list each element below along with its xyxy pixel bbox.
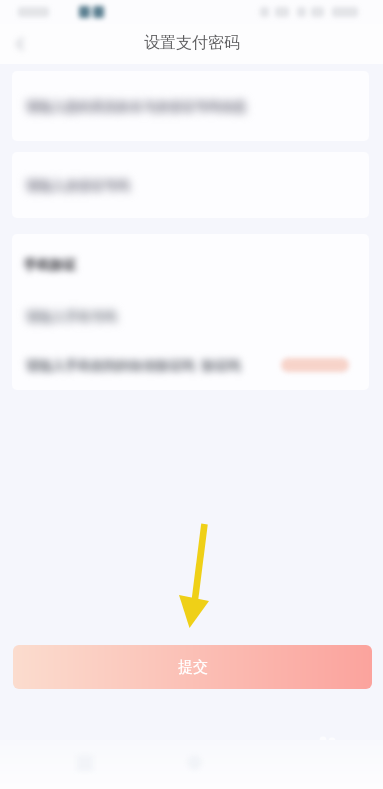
staticText: 请输入您的真实姓名与身份证号码信息	[26, 97, 247, 113]
staticText: 请输入手机收到的短信验证码 验证码	[26, 355, 241, 373]
button[interactable]: 提交	[13, 645, 372, 689]
button[interactable]: 请输入您的真实姓名与身份证号码信息	[12, 71, 369, 141]
button[interactable]: 请输入身份证号码	[12, 152, 369, 218]
staticText: 请输入手机号码	[26, 307, 117, 323]
staticText: 请输入身份证号码	[26, 177, 130, 193]
staticText: 请输入您的真实姓名与身份证号码信息	[25, 97, 246, 113]
staticText: 请输入您的真实姓名与身份证号码信息	[25, 99, 246, 115]
staticText: 请输入身份证号码	[25, 176, 129, 192]
staticText: 设置支付密码	[144, 33, 240, 53]
staticText: 请输入手机号码	[25, 307, 116, 323]
staticText: 请输入手机收到的短信验证码 验证码	[27, 355, 242, 373]
staticText: 请输入手机收到的短信验证码 验证码	[25, 355, 240, 373]
staticText: 请输入身份证号码	[25, 178, 129, 194]
staticText: 手机验证	[25, 255, 77, 271]
staticText: 请输入身份证号码	[27, 178, 131, 194]
staticText: 请输入您的真实姓名与身份证号码信息	[27, 99, 248, 115]
staticText: 手机验证	[23, 257, 75, 273]
staticText: 提交	[178, 658, 208, 677]
staticText: 请输入手机收到的短信验证码 验证码	[27, 357, 242, 375]
staticText: 请输入您的真实姓名与身份证号码信息	[25, 98, 246, 114]
staticText: 请输入身份证号码	[25, 177, 129, 193]
staticText: 请输入手机号码	[25, 309, 116, 325]
button[interactable]: 请输入手机号码	[12, 290, 369, 342]
staticText: 手机验证	[24, 257, 76, 273]
staticText: 请输入您的真实姓名与身份证号码信息	[26, 98, 247, 114]
staticText: 请输入身份证号码	[27, 176, 131, 192]
staticText: 请输入身份证号码	[26, 176, 130, 192]
button[interactable]: 获取验证码	[280, 355, 350, 375]
staticText: 请输入手机收到的短信验证码 验证码	[25, 357, 240, 375]
staticText: 手机验证	[25, 256, 77, 272]
staticText: 请输入您的真实姓名与身份证号码信息	[27, 98, 248, 114]
staticText: 手机验证	[23, 255, 75, 271]
staticText: 请输入手机号码	[25, 308, 116, 324]
staticText: 请输入手机号码	[26, 309, 117, 325]
staticText: 请输入身份证号码	[26, 178, 130, 194]
staticText: 请输入手机号码	[27, 308, 118, 324]
staticText: 请输入手机号码	[26, 308, 117, 324]
staticText: 请输入手机收到的短信验证码 验证码	[25, 356, 240, 374]
button[interactable]: Back	[0, 24, 40, 64]
staticText: 手机验证	[24, 256, 76, 272]
staticText: 手机验证	[25, 257, 77, 273]
staticText: 请输入手机号码	[27, 309, 118, 325]
staticText: 请输入您的真实姓名与身份证号码信息	[26, 99, 247, 115]
staticText: 手机验证	[23, 256, 75, 272]
button[interactable]: 手机验证	[12, 234, 369, 294]
staticText: 请输入手机号码	[27, 307, 118, 323]
staticText: 请输入手机收到的短信验证码 验证码	[26, 357, 241, 375]
staticText: 请输入手机收到的短信验证码 验证码	[26, 356, 241, 374]
staticText: 请输入您的真实姓名与身份证号码信息	[27, 97, 248, 113]
staticText: 请输入手机收到的短信验证码 验证码	[27, 356, 242, 374]
staticText: 手机验证	[24, 255, 76, 271]
staticText: 请输入身份证号码	[27, 177, 131, 193]
